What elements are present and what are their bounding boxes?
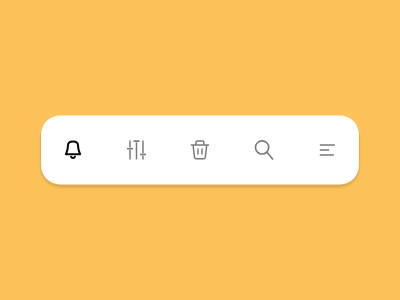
button[interactable]: Sort xyxy=(295,115,359,184)
button[interactable]: Search xyxy=(231,115,295,184)
button[interactable]: Tune xyxy=(104,115,167,184)
button[interactable]: Delete xyxy=(167,115,231,184)
button[interactable]: Notifications xyxy=(41,115,104,184)
